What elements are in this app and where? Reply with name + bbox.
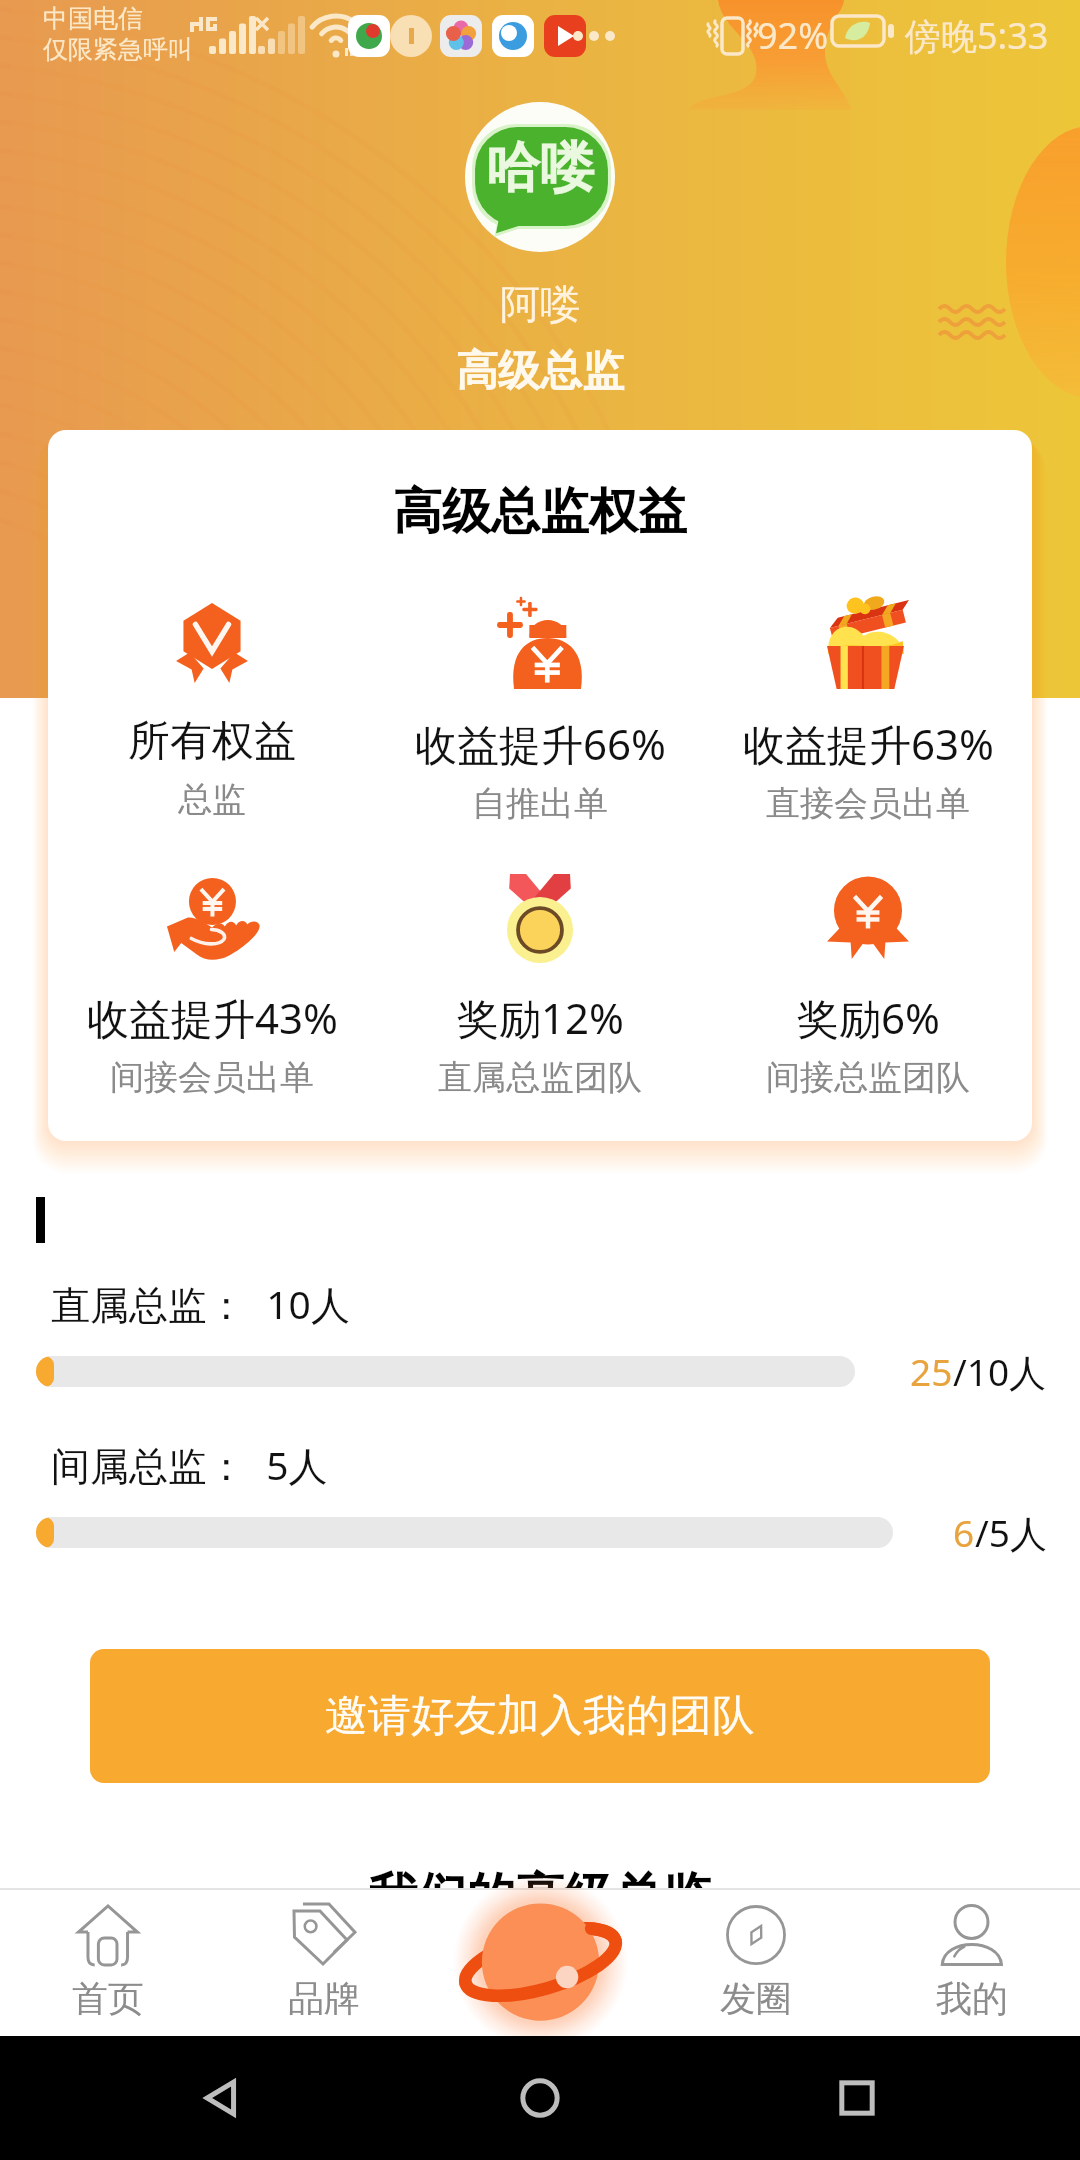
staticText: /10人 [953, 1346, 1047, 1397]
button[interactable]: 我的 [864, 1888, 1080, 2036]
button[interactable]: 奖励12% [376, 868, 704, 1099]
staticText: 直属总监： 10人 [51, 1277, 350, 1330]
staticText: 我们的高级总监 [0, 1866, 1080, 1928]
staticText: 哈喽 [486, 134, 594, 202]
button[interactable]: 首页 [0, 1888, 216, 2036]
staticText: 直接会员出单 [766, 782, 970, 825]
staticText: 傍晚5:33 [905, 11, 1049, 60]
staticText: 自推出单 [472, 782, 608, 825]
button[interactable]: 发现 [432, 1888, 648, 2036]
button[interactable]: 品牌 [216, 1888, 432, 2036]
button[interactable]: 收益提升43% [48, 868, 376, 1099]
button[interactable]: 所有权益 [48, 594, 376, 821]
staticText: 首页 [72, 1976, 144, 2021]
staticText: 收益提升63% [743, 715, 994, 772]
staticText: 品牌 [288, 1976, 360, 2021]
staticText: 直属总监团队 [438, 1056, 642, 1099]
staticText: 我的 [936, 1976, 1008, 2021]
staticText: 收益提升66% [415, 715, 666, 772]
staticText: 中国电信 [43, 3, 143, 34]
staticText: 仅限紧急呼叫 [43, 34, 193, 65]
button[interactable]: Recents [824, 2065, 890, 2131]
staticText: 邀请好友加入我的团队 [325, 1689, 755, 1743]
staticText: 奖励12% [457, 989, 624, 1046]
staticText: 高级总监 [456, 345, 624, 398]
staticText: 收益提升43% [87, 989, 338, 1046]
staticText: 奖励6% [797, 989, 940, 1046]
staticText: 间属总监： 5人 [51, 1438, 328, 1491]
button[interactable]: 收益提升66% [376, 594, 704, 825]
staticText: 阿喽 [500, 279, 580, 329]
button[interactable]: Home [507, 2065, 573, 2131]
staticText: 间接会员出单 [110, 1056, 314, 1099]
staticText: /5人 [975, 1507, 1047, 1558]
button[interactable]: 发圈 [648, 1888, 864, 2036]
staticText: 总监 [178, 778, 246, 821]
staticText: 发圈 [720, 1976, 792, 2021]
staticText: 高级总监权益 [48, 481, 1032, 543]
staticText: 6 [953, 1507, 975, 1557]
button[interactable]: 奖励6% [704, 868, 1032, 1099]
staticText: 所有权益 [128, 715, 296, 768]
staticText: 25 [910, 1346, 953, 1396]
button[interactable]: 邀请好友加入我的团队 [90, 1649, 990, 1783]
button[interactable]: 收益提升63% [704, 594, 1032, 825]
staticText: 间接总监团队 [766, 1056, 970, 1099]
staticText: 92% [757, 11, 829, 60]
button[interactable]: Back [190, 2065, 256, 2131]
